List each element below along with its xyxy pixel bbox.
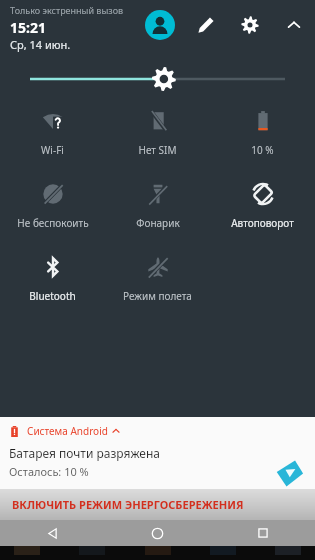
button[interactable]: Bluetooth [0,252,105,305]
button[interactable]: Автоповорот [210,179,315,232]
staticText: Осталось: 10 % [9,464,89,479]
staticText: Только экстренный вызов [10,4,124,16]
button[interactable]: Не беспокоить [0,179,105,232]
staticText: Режим полета [123,289,192,303]
staticText: Не беспокоить [17,216,89,230]
button[interactable]: Wi-Fi [0,106,105,159]
button[interactable]: Пользователь [145,10,175,40]
button[interactable]: Изменить [191,10,221,40]
staticText: Wi-Fi [41,143,64,157]
staticText: ВКЛЮЧИТЬ РЕЖИМ ЭНЕРГОСБЕРЕЖЕНИЯ [12,497,244,512]
button[interactable]: Назад [0,520,105,546]
staticText: Батарея почти разряжена [9,445,160,461]
button[interactable]: Свернуть [279,10,309,40]
button[interactable]: Нет SIM [105,106,210,159]
staticText: Система Android [27,424,108,438]
button[interactable]: Яркость [0,66,315,92]
button[interactable]: Главный экран [105,520,210,546]
staticText: Автоповорот [231,216,294,230]
button[interactable]: Настройки [235,10,265,40]
staticText: Ср, 14 июн. [10,37,71,52]
staticText: 15:21 [10,18,46,37]
button[interactable]: Режим полета [105,252,210,305]
staticText: Фонарик [136,216,180,230]
staticText: Нет SIM [138,143,177,157]
button[interactable]: ВКЛЮЧИТЬ РЕЖИМ ЭНЕРГОСБЕРЕЖЕНИЯ [0,489,315,520]
button[interactable]: Обзор [210,520,315,546]
button[interactable]: Фонарик [105,179,210,232]
button[interactable]: Система Android [0,417,315,489]
staticText: Bluetooth [29,289,76,303]
staticText: 10 % [251,143,274,157]
button[interactable]: 10 % [210,106,315,159]
